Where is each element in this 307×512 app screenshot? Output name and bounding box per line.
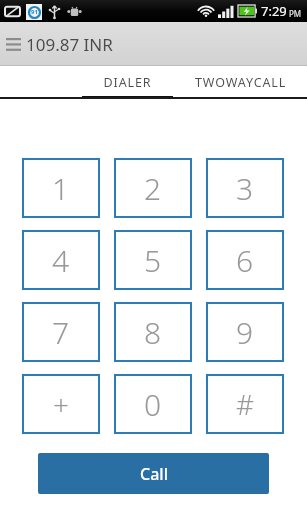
button[interactable]: 4 [22,230,100,290]
button[interactable]: 6 [206,230,284,290]
staticText: 4 [52,240,70,281]
staticText: 1 [52,168,70,209]
staticText: DIALER [103,74,152,91]
button[interactable]: 0 [114,374,192,434]
staticText: 2 [144,168,162,209]
button[interactable]: 9 [206,302,284,362]
button[interactable]: + [22,374,100,434]
button[interactable]: DIALER [79,66,175,99]
button[interactable]: 5 [114,230,192,290]
staticText: 7 [52,312,70,353]
button[interactable]: # [206,374,284,434]
staticText: Call [140,463,168,485]
staticText: 6 [236,240,254,281]
staticText: 9 [236,312,254,353]
staticText: 8 [144,312,162,353]
button[interactable]: 2 [114,158,192,218]
staticText: 109.87 INR [26,33,113,56]
button[interactable]: 3 [206,158,284,218]
staticText: 91 [31,8,38,16]
staticText: PM [289,8,302,19]
button[interactable]: 7 [22,302,100,362]
staticText: TWOWAYCALL [195,74,287,91]
staticText: 0 [144,384,162,425]
button[interactable]: 8 [114,302,192,362]
staticText: # [236,385,255,423]
staticText: 3 [236,168,254,209]
button[interactable]: Call [38,453,269,494]
staticText: 7:29 [261,2,287,20]
button[interactable]: TWOWAYCALL [175,66,307,99]
button[interactable]: 1 [22,158,100,218]
staticText: + [53,385,69,423]
staticText: 5 [144,240,162,281]
button[interactable]: Open navigation drawer [0,22,26,66]
